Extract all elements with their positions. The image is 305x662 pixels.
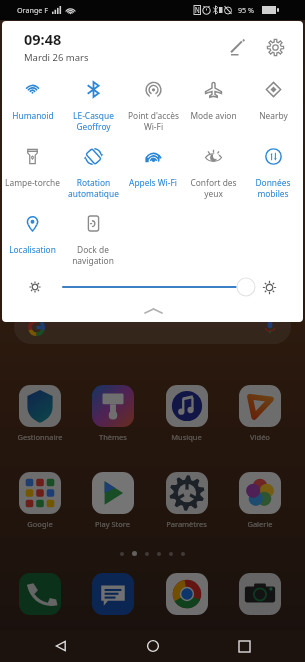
staticText: Rotation automatique <box>68 177 119 199</box>
button[interactable]: Back <box>31 630 91 662</box>
button[interactable]: Dock de navigation <box>63 206 123 273</box>
button[interactable]: Galerie <box>225 472 294 529</box>
staticText: Données mobiles <box>255 177 291 199</box>
staticText: Play Store <box>95 519 130 529</box>
button[interactable]: Point d'accès Wi-Fi <box>123 72 183 139</box>
staticText: LE-Casque Geoffroy <box>73 110 114 132</box>
button[interactable]: LE-Casque Geoffroy <box>63 72 123 139</box>
button[interactable]: Google <box>5 472 74 529</box>
staticText: Point d'accès Wi-Fi <box>128 110 179 132</box>
staticText: Humanoid <box>12 110 54 121</box>
staticText: Localisation <box>9 244 56 255</box>
button[interactable]: Rotation automatique <box>63 139 123 206</box>
staticText: Vidéo <box>250 432 270 442</box>
staticText: Gestionnaire <box>17 432 63 442</box>
staticText: Google <box>27 519 53 529</box>
button[interactable]: Home <box>123 630 183 662</box>
staticText: 95 % <box>238 5 255 15</box>
staticText: Confort des yeux <box>190 177 237 199</box>
button[interactable]: Play Store <box>78 472 147 529</box>
button[interactable]: Edit <box>221 31 253 63</box>
button[interactable]: Musique <box>152 385 221 442</box>
staticText: Lampe-torche <box>5 177 60 188</box>
staticText: 09:48 <box>24 29 62 49</box>
button[interactable]: Gestionnaire <box>5 385 74 442</box>
button[interactable] <box>152 573 221 615</box>
button[interactable]: Lampe-torche <box>2 139 63 206</box>
button[interactable]: Vidéo <box>225 385 294 442</box>
button[interactable]: Humanoid <box>2 72 63 139</box>
staticText: Appels Wi-Fi <box>129 177 177 188</box>
staticText: Paramètres <box>166 519 207 529</box>
staticText: Dock de navigation <box>72 244 114 266</box>
button[interactable]: Settings <box>259 31 291 63</box>
staticText: Mode avion <box>190 110 237 121</box>
button[interactable] <box>225 573 294 615</box>
staticText: Musique <box>171 432 202 442</box>
button[interactable]: Thèmes <box>78 385 147 442</box>
button[interactable]: Recents <box>214 630 274 662</box>
button[interactable]: Confort des yeux <box>183 139 243 206</box>
button[interactable]: Collapse <box>131 302 175 320</box>
button[interactable] <box>5 573 74 615</box>
button[interactable] <box>78 573 147 615</box>
button[interactable]: Localisation <box>2 206 63 273</box>
staticText: Galerie <box>247 519 273 529</box>
button[interactable]: Nearby <box>243 72 303 139</box>
button[interactable]: Appels Wi-Fi <box>123 139 183 206</box>
button[interactable]: Mode avion <box>183 72 243 139</box>
staticText: Orange F <box>17 5 48 15</box>
button[interactable]: Données mobiles <box>243 139 303 206</box>
staticText: Thèmes <box>99 432 127 442</box>
button[interactable] <box>14 310 291 344</box>
staticText: Mardi 26 mars <box>24 51 89 64</box>
staticText: Nearby <box>259 110 288 121</box>
button[interactable]: Paramètres <box>152 472 221 529</box>
